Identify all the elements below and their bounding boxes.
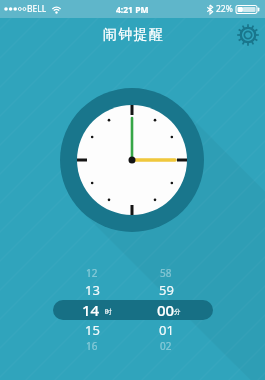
button[interactable]: 01 [146, 321, 186, 339]
button[interactable]: 15 [72, 321, 112, 339]
staticText: 59 [159, 281, 174, 299]
staticText: 58 [160, 266, 172, 280]
button[interactable]: 02 [146, 338, 186, 354]
button[interactable]: 12 [72, 265, 112, 281]
staticText: 分 [174, 308, 181, 316]
staticText: 14 [82, 300, 100, 320]
staticText: 01 [159, 321, 174, 339]
staticText: 时 [105, 308, 112, 316]
staticText: 4:21 PM [116, 4, 149, 16]
staticText: BELL [27, 3, 47, 15]
button[interactable] [53, 300, 213, 320]
button[interactable] [234, 21, 262, 49]
staticText: 12 [86, 266, 98, 280]
button[interactable]: 13 [72, 281, 112, 299]
staticText: 22% [216, 3, 233, 15]
staticText: 闹钟提醒 [102, 26, 164, 44]
staticText: 02 [160, 339, 172, 353]
staticText: 13 [85, 281, 100, 299]
button[interactable]: 58 [146, 265, 186, 281]
staticText: 16 [86, 339, 98, 353]
staticText: 00 [157, 300, 175, 320]
button[interactable]: 59 [146, 281, 186, 299]
staticText: 15 [85, 321, 100, 339]
button[interactable]: 16 [72, 338, 112, 354]
